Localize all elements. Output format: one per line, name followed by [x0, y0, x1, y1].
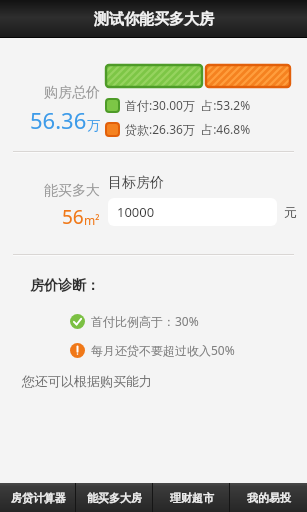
staticText: 购房总价	[44, 84, 100, 102]
button[interactable]: 我的易投	[230, 483, 307, 512]
staticText: m²	[84, 212, 100, 228]
staticText: 测试你能买多大房	[94, 10, 214, 29]
staticText: 房价诊断：	[30, 277, 100, 295]
staticText: 房贷计算器	[11, 491, 66, 505]
staticText: 能买多大	[44, 182, 100, 200]
staticText: 首付比例高于：30%	[91, 313, 199, 329]
staticText: 理财超市	[170, 491, 214, 505]
staticText: 首付:30.00万 占:53.2%	[125, 97, 251, 113]
staticText: 能买多大房	[87, 491, 142, 505]
button[interactable]: 能买多大房	[76, 483, 153, 512]
button[interactable]: 10000	[108, 198, 277, 226]
button[interactable]: 理财超市	[153, 483, 230, 512]
staticText: 我的易投	[247, 491, 291, 505]
button[interactable]: 房贷计算器	[0, 483, 76, 512]
staticText: 元	[284, 204, 297, 220]
staticText: 您还可以根据购买能力	[22, 373, 152, 389]
staticText: 目标房价	[108, 174, 164, 192]
staticText: 10000	[117, 203, 155, 221]
staticText: 56.36	[30, 105, 87, 135]
staticText: 万	[87, 117, 100, 133]
staticText: 每月还贷不要超过收入50%	[91, 342, 235, 358]
staticText: 贷款:26.36万 占:46.8%	[125, 121, 251, 137]
staticText: 56	[62, 204, 84, 230]
